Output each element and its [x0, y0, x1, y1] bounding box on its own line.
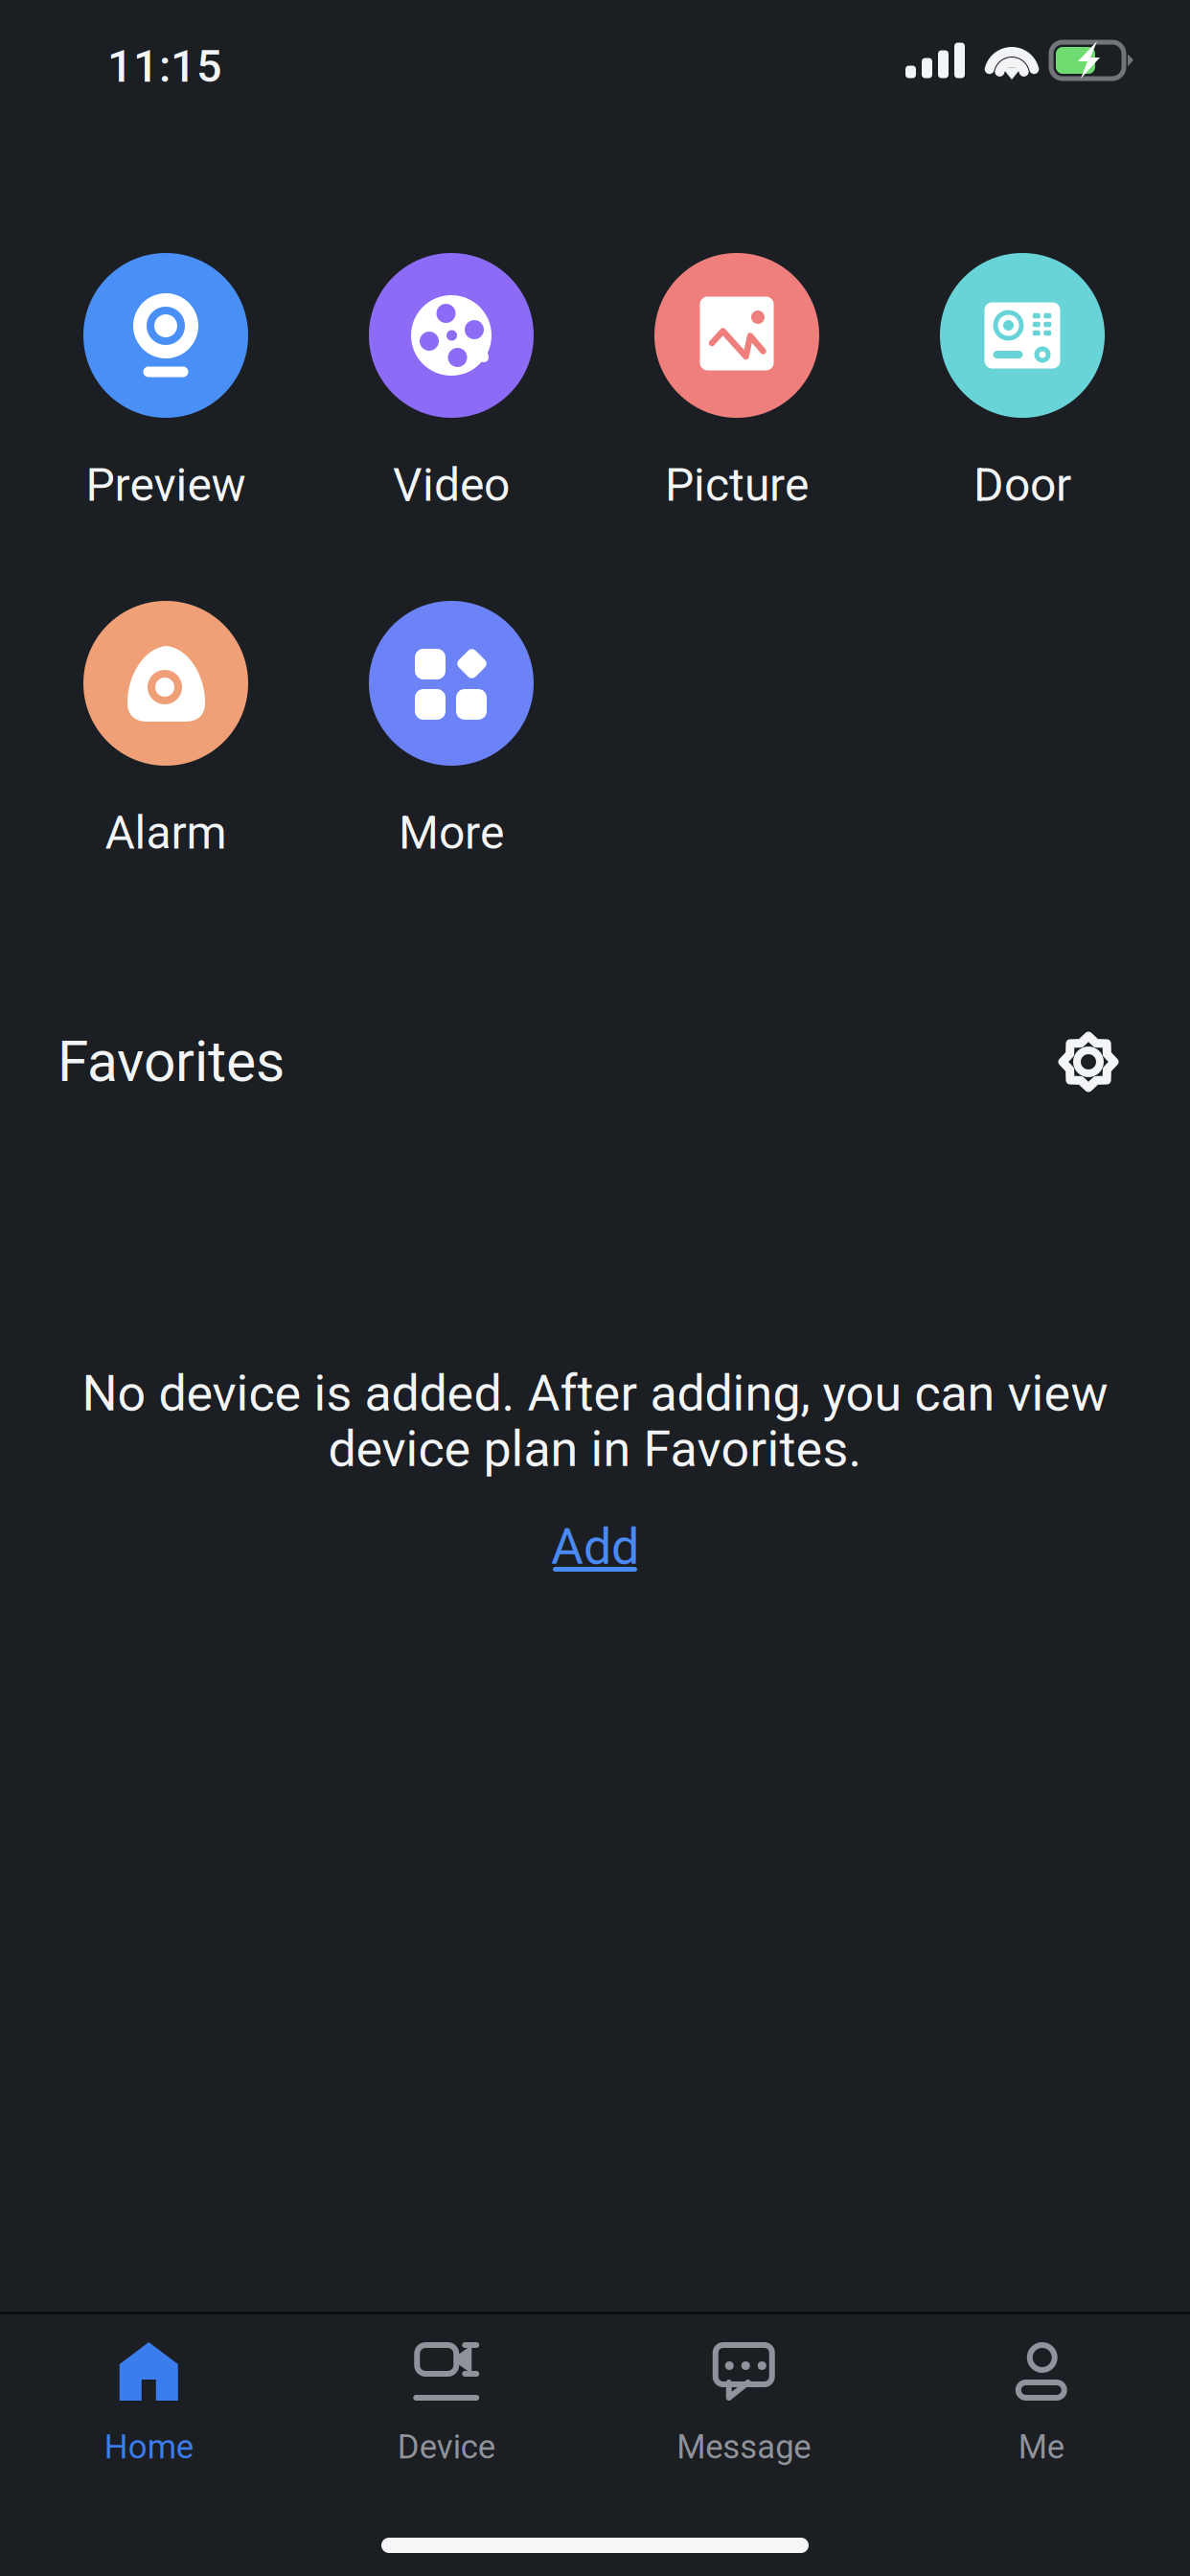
button[interactable]: Picture [594, 253, 880, 538]
button[interactable]: Video [309, 253, 594, 538]
button[interactable]: More [309, 601, 594, 885]
staticText: Alarm [105, 806, 227, 860]
button[interactable]: Door [880, 253, 1165, 538]
staticText: Preview [86, 458, 246, 512]
button[interactable]: Device [297, 2314, 595, 2483]
button[interactable]: Favorites settings [1041, 1014, 1136, 1110]
staticText: Door [973, 458, 1071, 512]
button[interactable]: Me [892, 2314, 1190, 2483]
button[interactable]: Preview [23, 253, 309, 538]
staticText: Me [1018, 2428, 1064, 2467]
staticText: Device [397, 2428, 495, 2467]
button[interactable]: Home [0, 2314, 297, 2483]
staticText: device plan in Favorites. [328, 1420, 862, 1478]
staticText: Home [104, 2428, 193, 2467]
staticText: Add [551, 1518, 639, 1576]
staticText: Favorites [57, 1029, 285, 1095]
staticText: 11:15 [107, 40, 222, 93]
staticText: Message [677, 2428, 811, 2467]
button[interactable]: Add [538, 1527, 652, 1575]
button[interactable]: Alarm [23, 601, 309, 885]
staticText: More [399, 806, 504, 860]
staticText: Picture [665, 458, 809, 512]
staticText: No device is added. After adding, you ca… [82, 1364, 1108, 1423]
staticText: Video [393, 458, 510, 512]
button[interactable]: Message [595, 2314, 892, 2483]
